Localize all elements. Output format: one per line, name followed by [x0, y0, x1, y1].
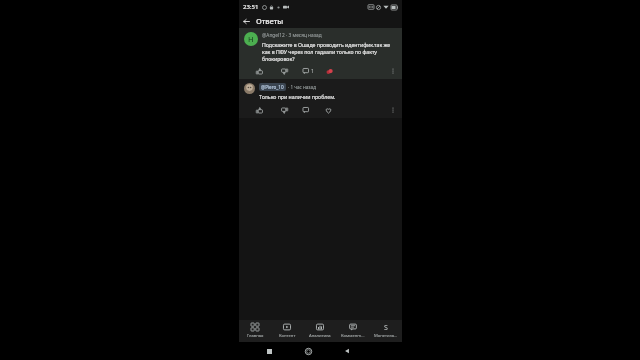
- button[interactable]: More options: [387, 104, 399, 116]
- button[interactable]: More options: [387, 65, 399, 77]
- button[interactable]: Reply: [303, 104, 309, 116]
- staticText: 23:51: [243, 3, 259, 11]
- staticText: @Angel12 · 3 месяц назад: [262, 32, 322, 39]
- staticText: Ответы: [256, 16, 284, 26]
- button[interactable]: Контент: [271, 320, 303, 342]
- button[interactable]: Back: [239, 14, 253, 28]
- staticText: Комменm…: [341, 333, 365, 339]
- staticText: Подскажите в Ошаде проводить идентифик.т…: [262, 41, 399, 62]
- button[interactable]: Reply: [303, 65, 314, 77]
- staticText: Аналитика: [309, 333, 331, 339]
- button[interactable]: H: [239, 28, 402, 79]
- staticText: Главная: [247, 333, 264, 339]
- button[interactable]: S: [369, 320, 402, 342]
- staticText: Только при наличии проблем.: [259, 93, 336, 100]
- button[interactable]: Recents: [262, 344, 276, 358]
- button[interactable]: Like: [253, 65, 265, 77]
- button[interactable]: Back: [340, 344, 354, 358]
- button[interactable]: Dislike: [278, 65, 290, 77]
- button[interactable]: Комменm…: [336, 320, 369, 342]
- button[interactable]: Reaction: [323, 65, 335, 77]
- staticText: H: [248, 34, 254, 44]
- staticText: 1: [311, 68, 314, 75]
- button[interactable]: Dislike: [278, 104, 290, 116]
- button[interactable]: Heart: [322, 104, 334, 116]
- staticText: Монетиза…: [374, 333, 398, 339]
- staticText: · 1 час назад: [288, 84, 316, 90]
- button[interactable]: @Piero_10: [239, 79, 402, 118]
- button[interactable]: Home: [301, 344, 315, 358]
- button[interactable]: Like: [253, 104, 265, 116]
- staticText: @Piero_10: [261, 84, 284, 90]
- button[interactable]: Аналитика: [303, 320, 336, 342]
- button[interactable]: Главная: [239, 320, 271, 342]
- staticText: S: [384, 323, 388, 331]
- staticText: Контент: [279, 333, 296, 339]
